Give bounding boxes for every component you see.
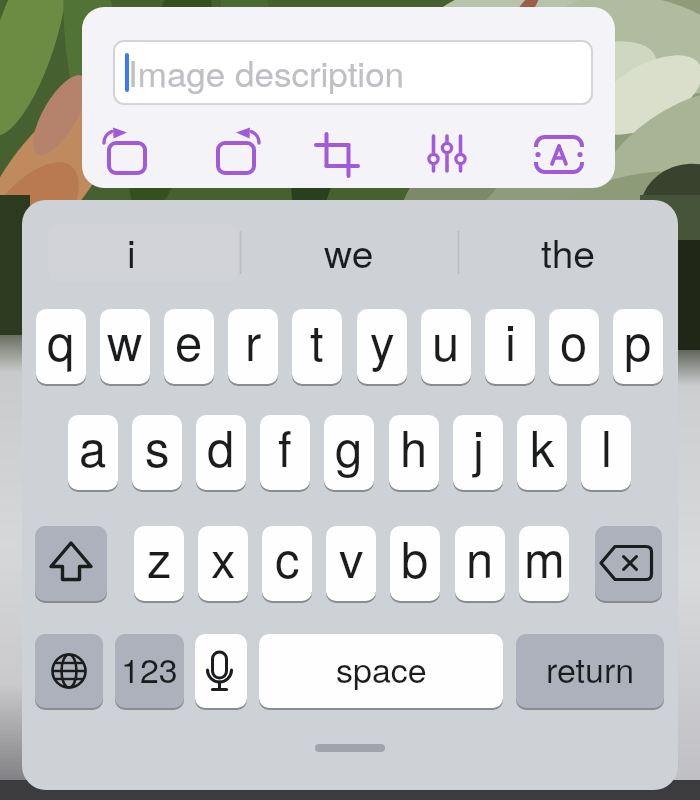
staticText: y bbox=[370, 305, 395, 375]
staticText: z bbox=[147, 522, 172, 592]
staticText: j bbox=[473, 411, 484, 481]
staticText: f bbox=[278, 411, 292, 481]
button[interactable]: l bbox=[581, 415, 631, 490]
button[interactable]: s bbox=[132, 415, 182, 490]
button[interactable]: b bbox=[390, 526, 440, 601]
button[interactable]: i bbox=[485, 309, 535, 384]
button[interactable]: v bbox=[326, 526, 376, 601]
button[interactable]: we bbox=[240, 222, 458, 284]
button[interactable]: r bbox=[228, 309, 278, 384]
staticText: space bbox=[336, 644, 427, 693]
button[interactable] bbox=[309, 127, 365, 183]
staticText: Image description bbox=[128, 47, 405, 97]
button[interactable]: j bbox=[453, 415, 503, 490]
button[interactable]: t bbox=[292, 309, 342, 384]
staticText: d bbox=[207, 411, 235, 481]
staticText: h bbox=[400, 411, 428, 481]
button[interactable] bbox=[595, 526, 662, 601]
button[interactable] bbox=[419, 127, 475, 183]
button[interactable]: f bbox=[260, 415, 310, 490]
staticText: i bbox=[505, 305, 516, 375]
staticText: w bbox=[107, 305, 143, 375]
staticText: m bbox=[524, 522, 565, 592]
staticText: return bbox=[546, 644, 635, 693]
button[interactable]: e bbox=[164, 309, 214, 384]
staticText: l bbox=[601, 411, 612, 481]
staticText: r bbox=[245, 305, 262, 375]
button[interactable]: 123 bbox=[115, 634, 184, 708]
staticText: x bbox=[211, 522, 236, 592]
staticText: v bbox=[339, 522, 364, 592]
button[interactable] bbox=[35, 634, 103, 708]
button[interactable]: m bbox=[519, 526, 569, 601]
button[interactable]: n bbox=[455, 526, 505, 601]
staticText: t bbox=[310, 305, 324, 375]
button[interactable]: return bbox=[516, 634, 664, 708]
button[interactable] bbox=[35, 526, 107, 601]
button[interactable] bbox=[195, 634, 247, 708]
staticText: q bbox=[47, 305, 75, 375]
button[interactable] bbox=[103, 127, 159, 183]
staticText: we bbox=[324, 223, 374, 279]
staticText: s bbox=[145, 411, 170, 481]
button[interactable]: u bbox=[421, 309, 471, 384]
staticText: a bbox=[79, 411, 107, 481]
staticText: 123 bbox=[121, 644, 178, 693]
staticText: p bbox=[624, 305, 652, 375]
staticText: the bbox=[541, 223, 596, 279]
staticText: b bbox=[401, 522, 429, 592]
staticText: g bbox=[335, 411, 363, 481]
button[interactable]: p bbox=[613, 309, 663, 384]
button[interactable] bbox=[531, 127, 587, 183]
staticText: u bbox=[432, 305, 460, 375]
staticText: o bbox=[560, 305, 588, 375]
button[interactable]: space bbox=[259, 634, 503, 708]
button[interactable]: y bbox=[357, 309, 407, 384]
button[interactable]: i bbox=[22, 222, 240, 284]
button[interactable]: Image description bbox=[114, 41, 592, 104]
button[interactable]: g bbox=[324, 415, 374, 490]
staticText: c bbox=[275, 522, 300, 592]
staticText: e bbox=[175, 305, 203, 375]
button[interactable]: the bbox=[458, 222, 678, 284]
staticText: k bbox=[530, 411, 555, 481]
button[interactable]: q bbox=[36, 309, 86, 384]
button[interactable]: z bbox=[134, 526, 184, 601]
staticText: n bbox=[466, 522, 494, 592]
button[interactable]: d bbox=[196, 415, 246, 490]
staticText: i bbox=[127, 223, 136, 279]
button[interactable] bbox=[203, 127, 259, 183]
button[interactable]: a bbox=[68, 415, 118, 490]
button[interactable]: h bbox=[389, 415, 439, 490]
button[interactable]: x bbox=[198, 526, 248, 601]
button[interactable]: o bbox=[549, 309, 599, 384]
button[interactable]: k bbox=[517, 415, 567, 490]
button[interactable]: c bbox=[262, 526, 312, 601]
button[interactable]: w bbox=[100, 309, 150, 384]
